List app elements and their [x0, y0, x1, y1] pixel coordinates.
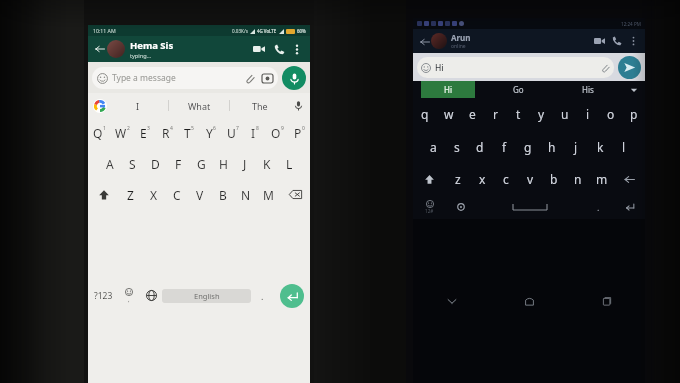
- button[interactable]: Z: [119, 179, 142, 210]
- button[interactable]: P: [288, 118, 310, 148]
- button[interactable]: I: [108, 93, 168, 118]
- button[interactable]: What: [169, 93, 229, 118]
- button[interactable]: A: [98, 148, 121, 179]
- button[interactable]: J: [234, 148, 256, 179]
- button[interactable]: y: [530, 98, 553, 130]
- button[interactable]: q: [413, 98, 437, 130]
- button[interactable]: O: [266, 118, 288, 148]
- button[interactable]: More options: [289, 41, 305, 57]
- button[interactable]: English: [162, 289, 251, 303]
- button[interactable]: Google: [91, 97, 108, 114]
- button[interactable]: H: [212, 148, 234, 179]
- button[interactable]: ?123: [88, 210, 118, 381]
- button[interactable]: Change language: [140, 210, 162, 381]
- button[interactable]: Y: [200, 118, 222, 148]
- button[interactable]: e: [461, 98, 484, 130]
- button[interactable]: Recent apps: [568, 219, 645, 383]
- button[interactable]: Enter: [614, 195, 645, 219]
- other: Send: [623, 61, 636, 74]
- button[interactable]: Settings: [445, 195, 476, 219]
- button[interactable]: K: [256, 148, 278, 179]
- button[interactable]: Video call: [249, 39, 269, 59]
- staticText: l: [622, 139, 626, 155]
- button[interactable]: k: [588, 130, 612, 163]
- button[interactable]: p: [622, 98, 645, 130]
- button[interactable]: Voice message: [282, 66, 306, 90]
- button[interactable]: r: [484, 98, 507, 130]
- button[interactable]: Type a message: [97, 67, 273, 89]
- button[interactable]: b: [542, 163, 566, 195]
- button[interactable]: Hi: [421, 81, 475, 98]
- button[interactable]: D: [144, 148, 167, 179]
- button[interactable]: Video call: [590, 32, 608, 50]
- button[interactable]: [107, 40, 125, 58]
- button[interactable]: E: [134, 118, 156, 148]
- button[interactable]: g: [516, 130, 540, 163]
- button[interactable]: t: [507, 98, 530, 130]
- button[interactable]: a: [422, 130, 445, 163]
- button[interactable]: Voice call: [269, 39, 289, 59]
- button[interactable]: ,: [118, 210, 140, 381]
- button[interactable]: His: [553, 81, 623, 98]
- button[interactable]: More options: [626, 34, 640, 48]
- button[interactable]: [431, 33, 447, 49]
- button[interactable]: h: [540, 130, 564, 163]
- button[interactable]: U: [222, 118, 244, 148]
- button[interactable]: Send: [618, 56, 641, 79]
- button[interactable]: w: [437, 98, 461, 130]
- button[interactable]: X: [142, 179, 165, 210]
- button[interactable]: Home: [491, 219, 568, 383]
- button[interactable]: .: [583, 195, 614, 219]
- button[interactable]: o: [599, 98, 622, 130]
- button[interactable]: l: [612, 130, 636, 163]
- button[interactable]: Hi: [421, 57, 610, 78]
- button[interactable]: Enter: [280, 284, 304, 308]
- button[interactable]: M: [257, 179, 280, 210]
- button[interactable]: Shift: [413, 163, 445, 195]
- button[interactable]: V: [188, 179, 211, 210]
- button[interactable]: I: [244, 118, 266, 148]
- button[interactable]: Voice message: [290, 97, 307, 114]
- button[interactable]: s: [445, 130, 468, 163]
- button[interactable]: z: [445, 163, 470, 195]
- button[interactable]: Voice call: [608, 32, 626, 50]
- button[interactable]: B: [211, 179, 234, 210]
- button[interactable]: f: [492, 130, 516, 163]
- button[interactable]: Q: [88, 118, 111, 148]
- button[interactable]: L: [278, 148, 300, 179]
- button[interactable]: R: [156, 118, 178, 148]
- other: Attach: [244, 73, 255, 84]
- button[interactable]: F: [167, 148, 190, 179]
- other: Recent apps: [600, 295, 613, 308]
- button[interactable]: G: [190, 148, 212, 179]
- button[interactable]: Back: [93, 42, 107, 56]
- button[interactable]: More suggestions: [623, 81, 645, 98]
- staticText: What: [188, 100, 211, 112]
- button[interactable]: x: [470, 163, 494, 195]
- button[interactable]: v: [518, 163, 542, 195]
- button[interactable]: Shift: [88, 179, 119, 210]
- button[interactable]: Backspace: [280, 179, 310, 210]
- button[interactable]: The: [230, 93, 290, 118]
- button[interactable]: N: [234, 179, 257, 210]
- button[interactable]: T: [178, 118, 200, 148]
- button[interactable]: W: [111, 118, 134, 148]
- button[interactable]: Backspace: [614, 163, 645, 195]
- button[interactable]: c: [494, 163, 518, 195]
- button[interactable]: d: [468, 130, 492, 163]
- button[interactable]: Back: [418, 35, 431, 48]
- button[interactable]: Space: [476, 195, 583, 219]
- other: Enter: [624, 201, 636, 213]
- button[interactable]: n: [566, 163, 590, 195]
- button[interactable]: 12#: [413, 195, 445, 219]
- button[interactable]: S: [121, 148, 144, 179]
- button[interactable]: j: [564, 130, 588, 163]
- button[interactable]: i: [576, 98, 599, 130]
- button[interactable]: Go: [483, 81, 553, 98]
- button[interactable]: m: [590, 163, 614, 195]
- button[interactable]: C: [165, 179, 188, 210]
- staticText: Go: [513, 84, 524, 95]
- button[interactable]: u: [553, 98, 576, 130]
